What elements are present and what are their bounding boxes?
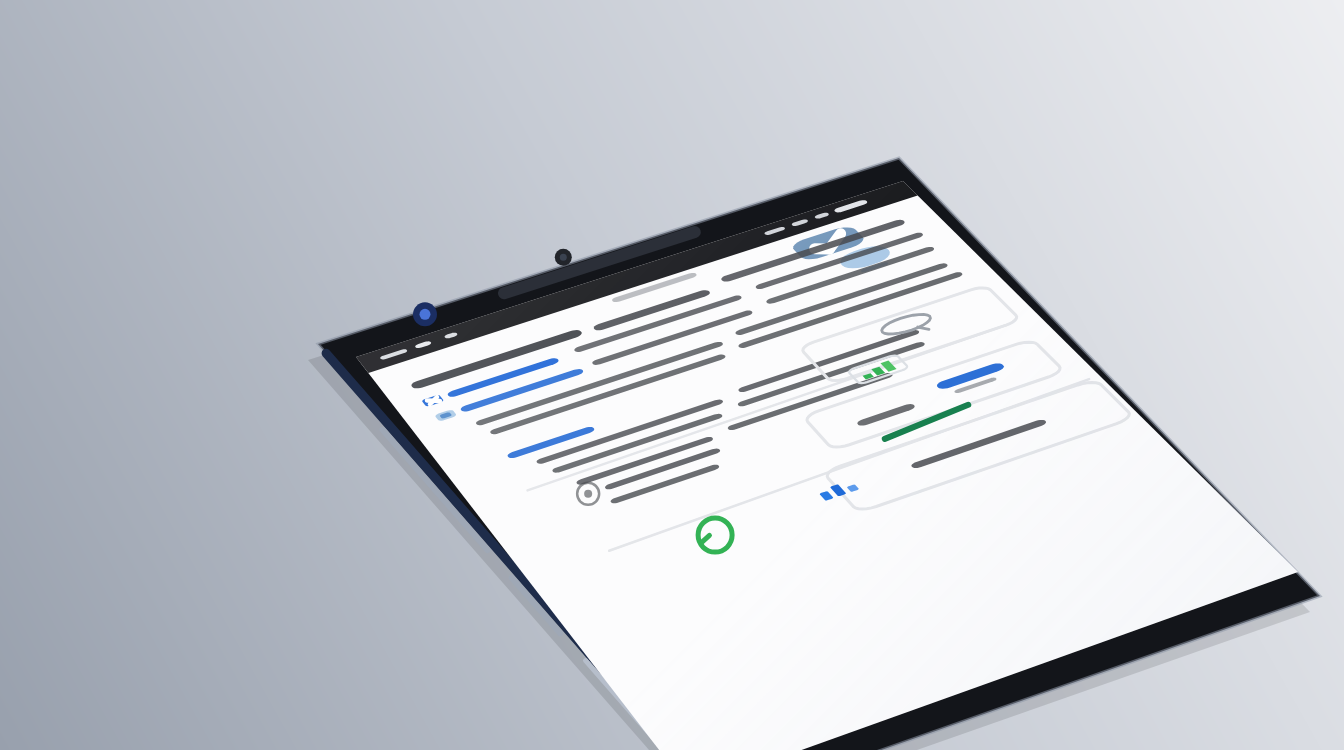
- button[interactable]: Phone showing app screen: [0, 0, 1344, 750]
